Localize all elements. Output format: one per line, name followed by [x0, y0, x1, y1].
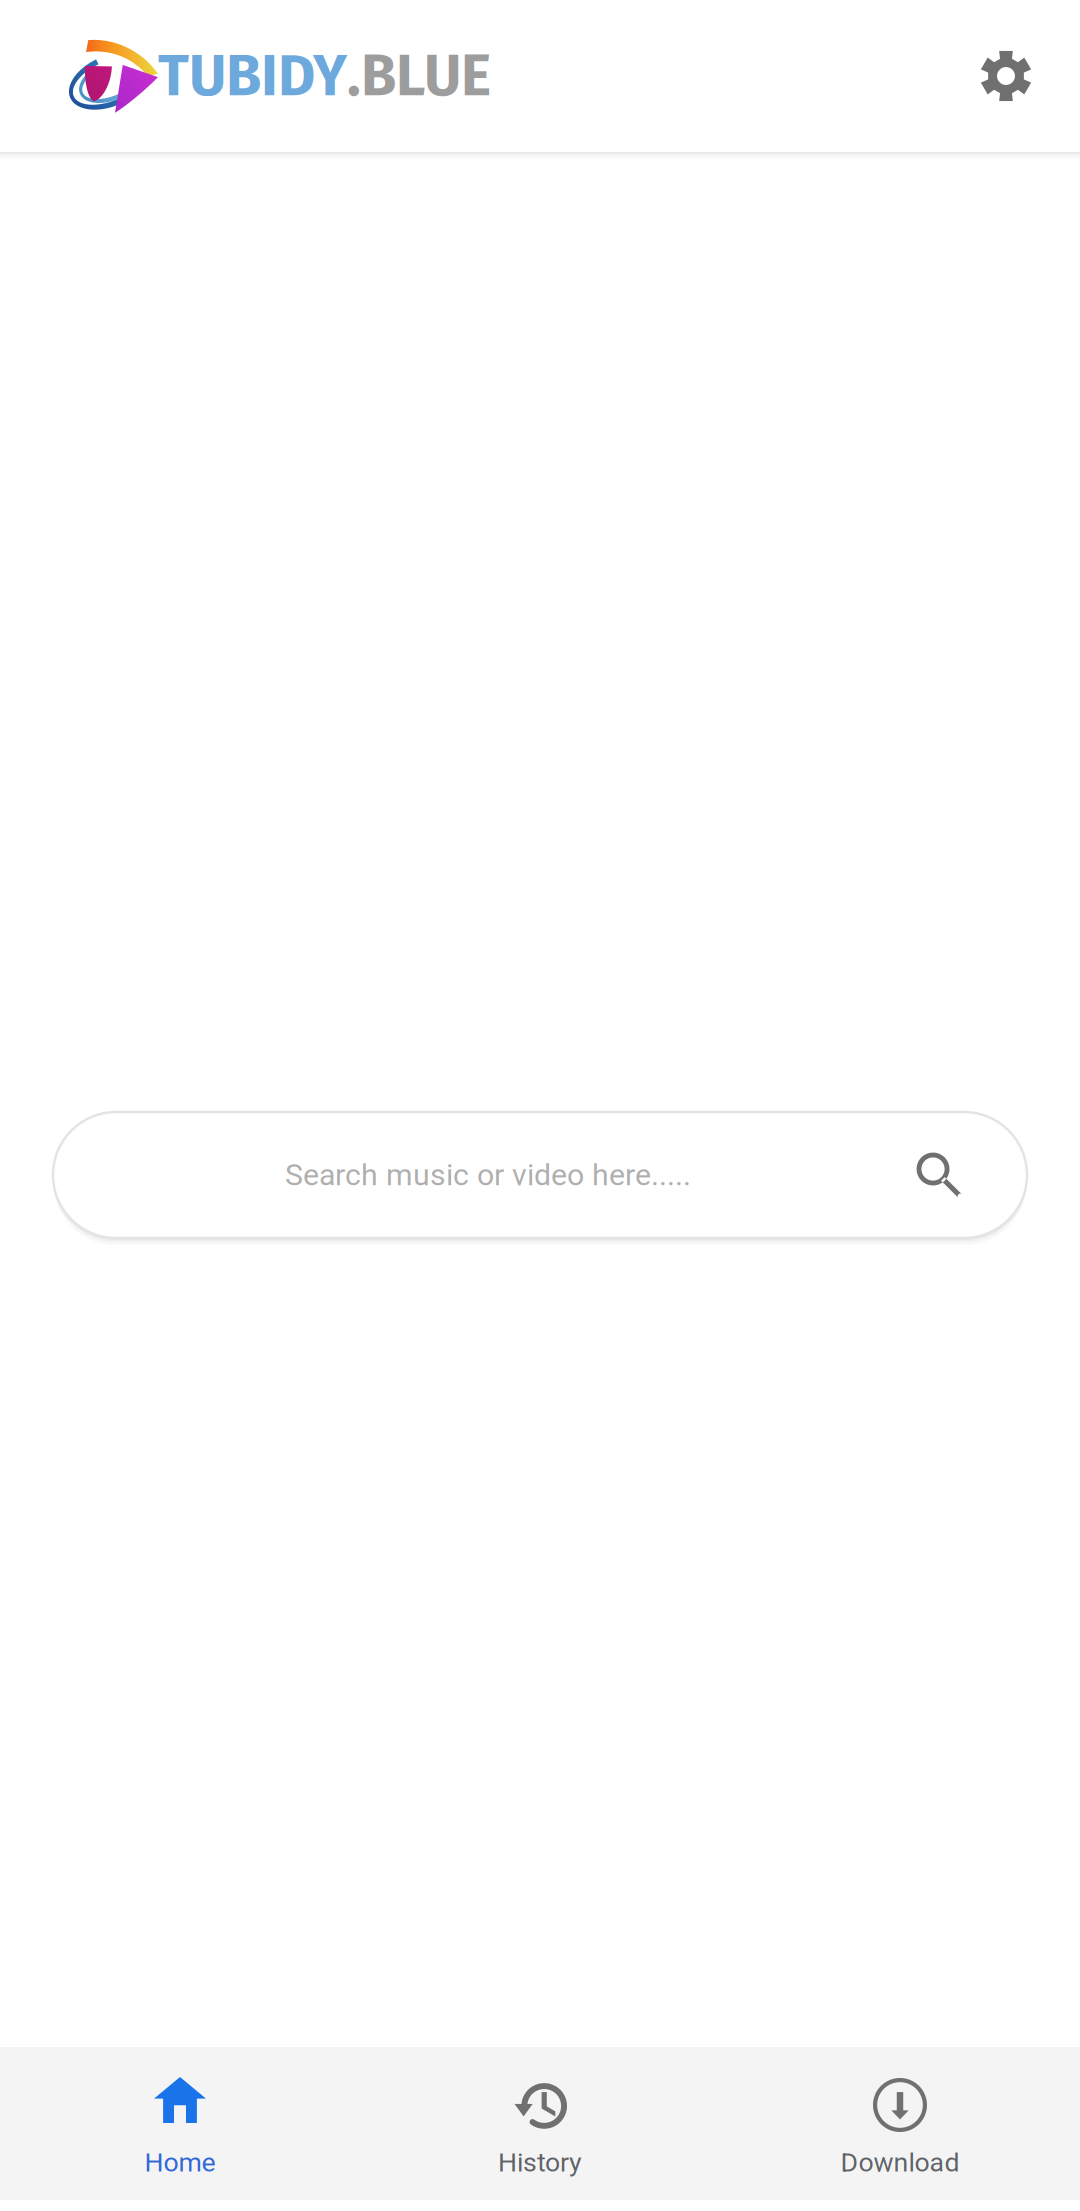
- staticText: Search music or video here.....: [285, 1157, 691, 1193]
- button[interactable]: Home: [0, 2047, 360, 2200]
- button[interactable]: History: [360, 2047, 720, 2200]
- staticText: Download: [840, 2147, 959, 2178]
- staticText: History: [498, 2147, 582, 2178]
- button[interactable]: Settings: [956, 19, 1080, 133]
- button[interactable]: Download: [720, 2047, 1080, 2200]
- staticText: .BLUE: [347, 42, 491, 110]
- button[interactable]: Search music or video here.....: [53, 1112, 1027, 1238]
- staticText: Home: [144, 2147, 215, 2178]
- staticText: TUBIDY: [158, 42, 347, 110]
